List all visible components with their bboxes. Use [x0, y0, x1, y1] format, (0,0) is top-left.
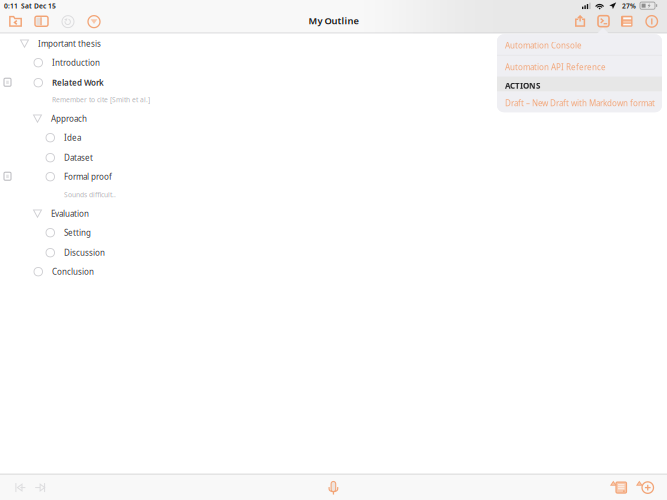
- button[interactable]: Dictate: [326, 479, 342, 497]
- button[interactable]: Add Note: [610, 480, 632, 496]
- staticText: 0:11: [4, 1, 18, 10]
- staticText: Related Work: [52, 77, 104, 88]
- staticText: Setting: [64, 227, 91, 238]
- button[interactable]: Add Row: [636, 480, 658, 496]
- staticText: Draft – New Draft with Markdown format: [505, 98, 655, 108]
- staticText: Important thesis: [38, 38, 101, 49]
- button[interactable]: Undo: [56, 12, 82, 33]
- staticText: 27%: [622, 1, 636, 10]
- button[interactable]: Conclusion: [0, 262, 500, 281]
- staticText: Introduction: [52, 57, 100, 68]
- staticText: Automation Console: [505, 40, 582, 51]
- button[interactable]: Outline Options: [615, 12, 641, 33]
- button[interactable]: Share: [569, 12, 595, 33]
- button[interactable]: Approach: [0, 109, 500, 128]
- button[interactable]: Info: [640, 12, 666, 33]
- button[interactable]: Indent: [32, 481, 50, 495]
- staticText: Sounds difficult..: [64, 190, 116, 199]
- button[interactable]: Automation: [592, 12, 618, 33]
- button[interactable]: Formal proof: [0, 167, 500, 186]
- staticText: ACTIONS: [505, 80, 540, 91]
- staticText: My Outline: [308, 14, 358, 27]
- button[interactable]: Setting: [0, 223, 500, 242]
- staticText: Dataset: [64, 152, 93, 163]
- staticText: Sat Dec 15: [21, 1, 56, 10]
- staticText: Evaluation: [51, 208, 89, 219]
- staticText: Conclusion: [52, 266, 94, 277]
- button[interactable]: Evaluation: [0, 204, 500, 223]
- button[interactable]: Related Work: [0, 73, 500, 92]
- button[interactable]: Outdent: [12, 481, 30, 495]
- staticText: Discussion: [64, 247, 105, 258]
- button[interactable]: Introduction: [0, 53, 500, 72]
- button[interactable]: Dataset: [0, 148, 500, 167]
- button[interactable]: Idea: [0, 128, 500, 147]
- button[interactable]: Important thesis: [0, 34, 500, 53]
- button[interactable]: Draft – New Draft with Markdown format: [497, 92, 662, 113]
- staticText: Approach: [51, 113, 87, 124]
- button[interactable]: Automation API Reference: [497, 56, 662, 77]
- button[interactable]: Toggle Sidebar: [29, 12, 55, 33]
- staticText: Idea: [64, 132, 81, 143]
- staticText: Automation API Reference: [505, 62, 606, 72]
- button[interactable]: Redo: [82, 12, 108, 33]
- button[interactable]: Documents: [3, 12, 29, 33]
- button[interactable]: Discussion: [0, 243, 500, 262]
- staticText: Remember to cite [Smith et al.]: [52, 95, 150, 104]
- staticText: Formal proof: [64, 171, 112, 182]
- button[interactable]: Automation Console: [497, 34, 662, 55]
